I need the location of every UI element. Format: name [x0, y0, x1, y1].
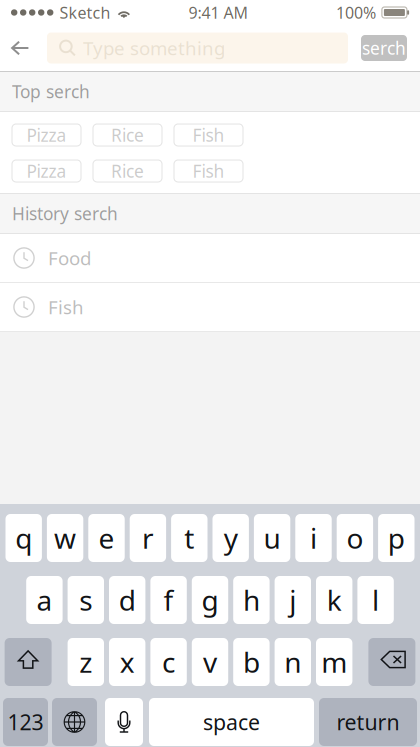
- staticText: x: [120, 643, 135, 681]
- staticText: m: [321, 643, 347, 681]
- button[interactable]: v: [192, 638, 228, 686]
- staticText: v: [203, 643, 217, 681]
- staticText: s: [79, 581, 92, 619]
- staticText: 123: [7, 708, 43, 736]
- button[interactable]: w: [47, 514, 83, 562]
- staticText: j: [289, 581, 296, 619]
- staticText: serch: [362, 36, 406, 59]
- staticText: n: [284, 643, 301, 681]
- button[interactable]: Shift: [5, 638, 52, 686]
- button[interactable]: Delete: [368, 638, 415, 686]
- button[interactable]: t: [171, 514, 207, 562]
- button[interactable]: q: [5, 514, 42, 562]
- staticText: d: [119, 581, 136, 619]
- staticText: c: [162, 643, 175, 681]
- staticText: History serch: [12, 202, 118, 225]
- staticText: w: [54, 519, 76, 557]
- staticText: r: [142, 519, 154, 557]
- button[interactable]: Rice: [93, 160, 162, 182]
- button[interactable]: f: [150, 576, 187, 624]
- staticText: Rice: [111, 159, 144, 182]
- button[interactable]: Rice: [93, 124, 162, 146]
- staticText: g: [201, 581, 218, 619]
- button[interactable]: h: [233, 576, 270, 624]
- button[interactable]: l: [357, 576, 394, 624]
- staticText: Fish: [48, 295, 84, 319]
- staticText: Type something: [83, 36, 225, 60]
- staticText: q: [15, 519, 32, 557]
- button[interactable]: serch: [361, 35, 407, 61]
- staticText: 9:41 AM: [188, 2, 248, 23]
- button[interactable]: p: [378, 514, 414, 562]
- button[interactable]: b: [233, 638, 270, 686]
- staticText: b: [243, 643, 260, 681]
- button[interactable]: Next keyboard: [52, 698, 97, 746]
- staticText: u: [264, 519, 281, 557]
- button[interactable]: s: [68, 576, 104, 624]
- staticText: space: [203, 708, 260, 736]
- button[interactable]: x: [109, 638, 145, 686]
- button[interactable]: m: [316, 638, 352, 686]
- button[interactable]: e: [88, 514, 125, 562]
- button[interactable]: k: [316, 576, 352, 624]
- staticText: Fish: [192, 159, 224, 182]
- button[interactable]: Pizza: [12, 160, 81, 182]
- staticText: f: [164, 581, 174, 619]
- button[interactable]: u: [254, 514, 290, 562]
- button[interactable]: y: [212, 514, 249, 562]
- button[interactable]: space: [149, 698, 314, 746]
- button[interactable]: d: [109, 576, 145, 624]
- staticText: t: [184, 519, 194, 557]
- staticText: y: [224, 519, 238, 557]
- button[interactable]: r: [130, 514, 166, 562]
- button[interactable]: Fish: [174, 124, 243, 146]
- staticText: Pizza: [26, 123, 66, 146]
- staticText: Pizza: [26, 159, 66, 182]
- staticText: return: [336, 708, 399, 736]
- button[interactable]: g: [192, 576, 228, 624]
- button[interactable]: a: [26, 576, 63, 624]
- button[interactable]: n: [275, 638, 311, 686]
- staticText: Rice: [111, 123, 144, 146]
- staticText: k: [327, 581, 342, 619]
- staticText: Sketch: [59, 2, 110, 23]
- staticText: p: [388, 519, 405, 557]
- staticText: i: [310, 519, 317, 557]
- button[interactable]: 123: [3, 698, 48, 746]
- button[interactable]: i: [295, 514, 332, 562]
- staticText: z: [79, 643, 92, 681]
- staticText: e: [98, 519, 114, 557]
- button[interactable]: o: [337, 514, 373, 562]
- button[interactable]: return: [319, 698, 417, 746]
- button[interactable]: j: [275, 576, 311, 624]
- button[interactable]: Food: [0, 234, 420, 283]
- button[interactable]: z: [68, 638, 104, 686]
- button[interactable]: Dictation: [105, 698, 143, 746]
- staticText: Fish: [192, 123, 224, 146]
- staticText: a: [36, 581, 52, 619]
- staticText: 100%: [336, 2, 376, 23]
- button[interactable]: Fish: [174, 160, 243, 182]
- staticText: Food: [48, 246, 91, 270]
- staticText: o: [346, 519, 363, 557]
- button[interactable]: Fish: [0, 283, 420, 332]
- button[interactable]: Back: [0, 25, 47, 71]
- staticText: Top serch: [12, 80, 90, 103]
- staticText: l: [372, 581, 379, 619]
- staticText: h: [243, 581, 260, 619]
- button[interactable]: Pizza: [12, 124, 81, 146]
- button[interactable]: c: [150, 638, 187, 686]
